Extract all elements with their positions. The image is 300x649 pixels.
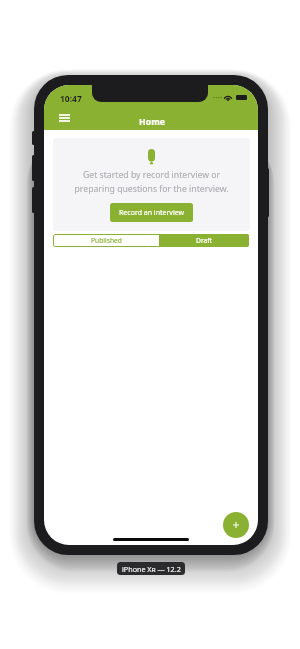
staticText: Record an interview — [119, 208, 185, 218]
button[interactable]: Record an interview — [110, 203, 193, 222]
staticText: 10:47 — [60, 93, 82, 105]
staticText: Home — [139, 116, 166, 128]
button[interactable]: Draft — [159, 234, 249, 247]
staticText: Get started by record interview or prepa… — [53, 169, 250, 194]
button[interactable]: Published — [53, 234, 159, 247]
button[interactable]: Add new interview — [223, 512, 249, 538]
staticText: iPhone Xʀ — 12.2 — [122, 564, 181, 574]
staticText: Draft — [196, 236, 212, 245]
button[interactable]: Open navigation menu — [50, 107, 79, 129]
staticText: Published — [91, 236, 122, 245]
